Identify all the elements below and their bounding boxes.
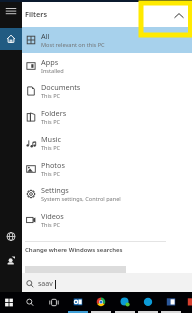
button[interactable]: saav [22, 276, 126, 292]
button[interactable]: Collapse [171, 8, 187, 22]
button[interactable]: Outlook [67, 292, 89, 313]
button[interactable]: Apps [22, 53, 192, 79]
button[interactable]: Menu [0, 0, 22, 22]
button[interactable]: Music [22, 130, 192, 156]
staticText: System settings, Control panel [41, 195, 121, 203]
staticText: Filters [25, 9, 48, 19]
button[interactable]: Word [160, 292, 182, 313]
button[interactable]: Settings [22, 181, 192, 207]
button[interactable]: Search [19, 292, 41, 313]
staticText: This PC [41, 92, 61, 100]
button[interactable]: Home [0, 28, 22, 50]
button[interactable]: Chrome [90, 292, 112, 313]
staticText: Photos [41, 160, 65, 170]
button[interactable]: Start [0, 292, 20, 313]
button[interactable]: All [22, 27, 192, 53]
staticText: This PC [41, 144, 61, 152]
staticText: Folders [41, 108, 67, 118]
staticText: This PC [41, 221, 61, 229]
button[interactable]: More [181, 292, 192, 313]
staticText: Apps [41, 57, 59, 67]
staticText: This PC [41, 170, 61, 178]
staticText: Music [41, 134, 62, 144]
button[interactable]: Skype [137, 292, 159, 313]
staticText: This PC [41, 118, 61, 126]
staticText: Documents [41, 82, 81, 92]
staticText: Settings [41, 185, 69, 195]
button[interactable]: Skype for Business [114, 292, 136, 313]
button[interactable]: Photos [22, 156, 192, 182]
staticText: Change where Windows searches [25, 246, 123, 254]
button[interactable]: Task view [43, 292, 65, 313]
button[interactable]: Account [0, 251, 22, 269]
staticText: Most relevant on this PC [41, 41, 105, 49]
staticText: Videos [41, 211, 64, 221]
staticText: saav [38, 279, 53, 289]
button[interactable]: Web [0, 228, 22, 245]
button[interactable]: Videos [22, 207, 192, 233]
button[interactable]: Documents [22, 78, 192, 104]
staticText: Installed [41, 67, 64, 75]
staticText: All [41, 31, 50, 41]
button[interactable]: Folders [22, 104, 192, 130]
